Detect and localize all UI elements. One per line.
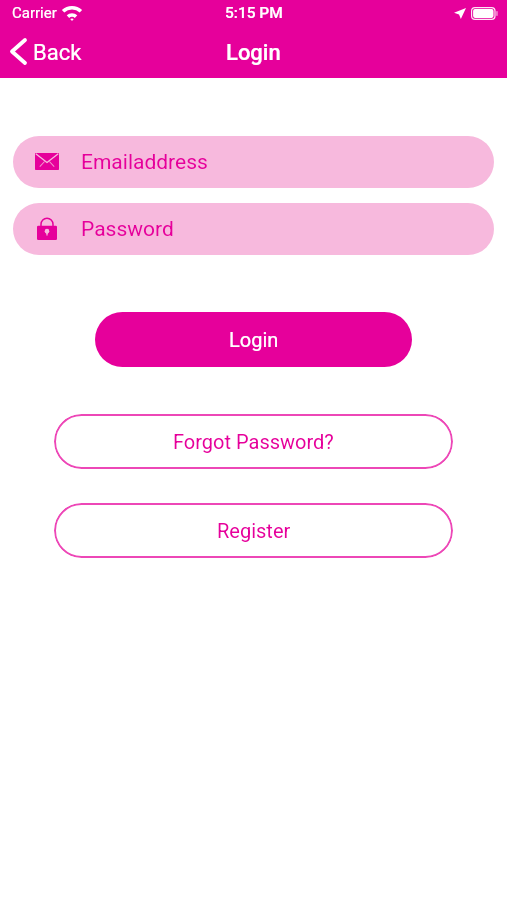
button[interactable]: Forgot Password? <box>54 414 453 469</box>
staticText: Register <box>217 519 291 542</box>
button[interactable]: Back <box>0 28 96 78</box>
staticText: Emailaddress <box>81 150 208 175</box>
button[interactable]: Register <box>54 503 453 558</box>
button[interactable]: Password <box>13 203 494 255</box>
staticText: Login <box>229 328 279 351</box>
button[interactable]: Emailaddress <box>13 136 494 188</box>
staticText: Back <box>33 40 82 66</box>
staticText: Forgot Password? <box>173 430 334 453</box>
staticText: 5:15 PM <box>225 4 283 22</box>
staticText: Carrier <box>12 4 57 22</box>
staticText: Login <box>226 40 281 66</box>
button[interactable]: Login <box>95 312 412 367</box>
staticText: Password <box>81 217 174 242</box>
other: Back <box>10 38 27 65</box>
